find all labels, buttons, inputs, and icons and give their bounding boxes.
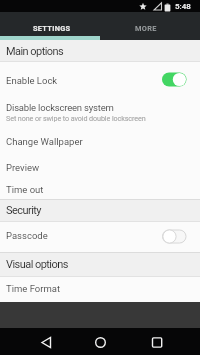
staticText: 5:48 xyxy=(175,2,191,11)
staticText: Enable Lock xyxy=(6,75,58,86)
staticText: Time out xyxy=(6,184,44,195)
staticText: Disable lockscreen system xyxy=(6,102,114,113)
staticText: Change Wallpaper xyxy=(6,136,83,147)
staticText: Preview xyxy=(6,162,40,173)
staticText: Security xyxy=(6,204,41,217)
staticText: MORE xyxy=(135,24,157,33)
staticText: Visual options xyxy=(6,258,68,271)
staticText: Time Format xyxy=(6,283,61,294)
staticText: Passcode xyxy=(6,230,48,241)
staticText: SETTINGS xyxy=(33,24,71,33)
staticText: Main options xyxy=(6,45,64,58)
staticText: Set none or swipe to avoid double locksc… xyxy=(6,114,146,122)
